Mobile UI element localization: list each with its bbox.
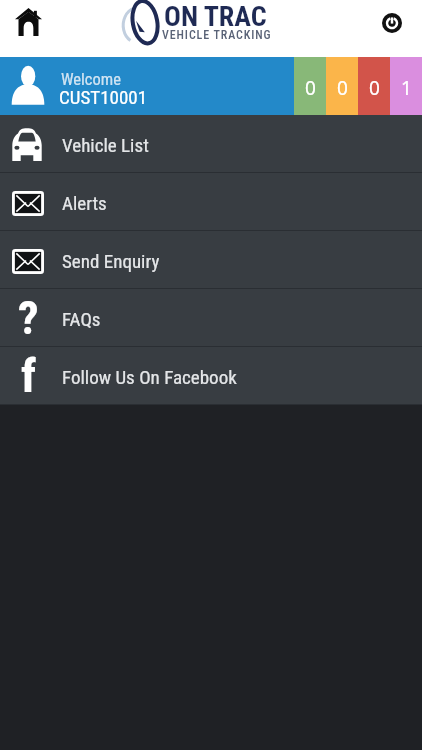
staticText: Welcome xyxy=(61,70,121,89)
staticText: FAQs xyxy=(62,308,101,330)
button[interactable]: 0 xyxy=(294,57,326,115)
staticText: VEHICLE TRACKING xyxy=(162,28,272,42)
staticText: Alerts xyxy=(62,192,107,214)
staticText: Follow Us On Facebook xyxy=(62,366,237,388)
staticText: CUST10001 xyxy=(59,86,148,108)
button[interactable]: f xyxy=(0,347,422,404)
staticText: 1 xyxy=(401,75,412,101)
staticText: ? xyxy=(18,291,39,345)
button[interactable]: ? xyxy=(0,289,422,346)
button[interactable]: Alerts xyxy=(0,173,422,230)
staticText: 0 xyxy=(337,75,348,101)
button[interactable]: Send Enquiry xyxy=(0,231,422,288)
staticText: Vehicle List xyxy=(62,134,149,156)
button[interactable]: 0 xyxy=(358,57,390,115)
button[interactable]: 0 xyxy=(326,57,358,115)
staticText: 0 xyxy=(369,75,380,101)
staticText: ON TRAC xyxy=(164,0,267,33)
staticText: f xyxy=(21,349,37,403)
staticText: Send Enquiry xyxy=(62,250,160,272)
button[interactable]: Home xyxy=(2,0,55,44)
button[interactable]: Logout xyxy=(377,0,421,47)
staticText: 0 xyxy=(305,75,316,101)
button[interactable]: Vehicle List xyxy=(0,115,422,172)
button[interactable]: 1 xyxy=(390,57,422,115)
button[interactable]: Welcome xyxy=(0,57,294,115)
